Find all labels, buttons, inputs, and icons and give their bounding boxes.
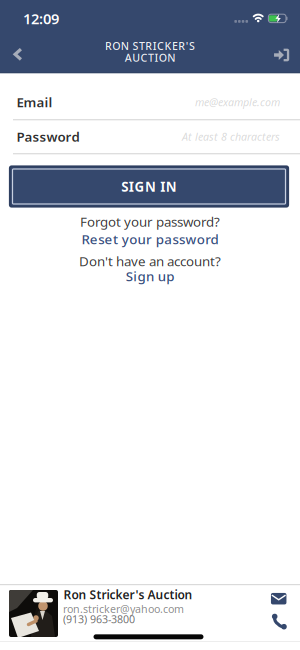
staticText: Don't have an account? bbox=[79, 252, 221, 270]
staticText: 12:09 bbox=[23, 9, 59, 28]
button[interactable]: Password bbox=[0, 122, 300, 157]
staticText: (913) 963-3800 bbox=[63, 612, 135, 626]
staticText: Reset your password bbox=[81, 230, 219, 248]
staticText: me@example.com bbox=[195, 95, 280, 109]
staticText: Ron Stricker's Auction bbox=[63, 586, 192, 602]
button[interactable]: SIGN IN bbox=[10, 166, 288, 206]
button[interactable]: Sign in bbox=[266, 41, 297, 69]
staticText: RON STRICKER'S bbox=[105, 39, 195, 53]
button[interactable]: Reset your password bbox=[75, 227, 225, 251]
button[interactable]: Back bbox=[3, 37, 32, 71]
button[interactable]: Sign up bbox=[120, 264, 180, 288]
button[interactable]: Email bbox=[0, 87, 300, 122]
staticText: Email bbox=[16, 93, 52, 111]
staticText: ron.stricker@yahoo.com bbox=[63, 602, 184, 616]
staticText: Forgot your password? bbox=[80, 213, 220, 230]
button[interactable]: Email bbox=[267, 589, 290, 608]
staticText: At least 8 characters bbox=[182, 129, 280, 144]
button[interactable]: Call bbox=[267, 609, 290, 633]
staticText: Sign up bbox=[126, 267, 174, 285]
staticText: Password bbox=[16, 128, 79, 145]
staticText: SIGN IN bbox=[121, 178, 177, 195]
staticText: AUCTION bbox=[125, 50, 175, 65]
